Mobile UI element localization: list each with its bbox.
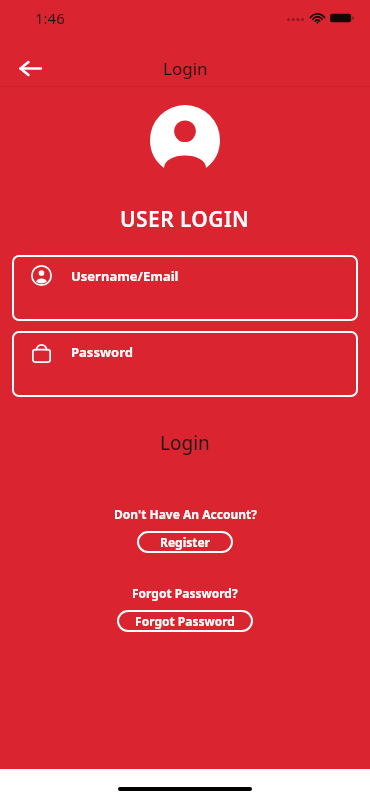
button[interactable]: Forgot Password xyxy=(117,610,253,632)
staticText: Forgot Password xyxy=(135,613,235,629)
staticText: Login xyxy=(160,430,210,456)
staticText: Password xyxy=(71,343,133,361)
button[interactable]: Username/Email xyxy=(12,255,358,321)
staticText: USER LOGIN xyxy=(120,205,250,234)
button[interactable]: Register xyxy=(137,531,233,553)
staticText: Username/Email xyxy=(71,267,179,285)
button[interactable]: Back xyxy=(14,52,47,85)
staticText: Forgot Password? xyxy=(132,585,238,601)
button[interactable]: Login xyxy=(0,422,370,464)
staticText: 1:46 xyxy=(35,8,65,28)
staticText: Login xyxy=(163,57,208,80)
button[interactable]: Password xyxy=(12,331,358,397)
staticText: Register xyxy=(160,534,210,550)
staticText: Don't Have An Account? xyxy=(114,506,257,522)
